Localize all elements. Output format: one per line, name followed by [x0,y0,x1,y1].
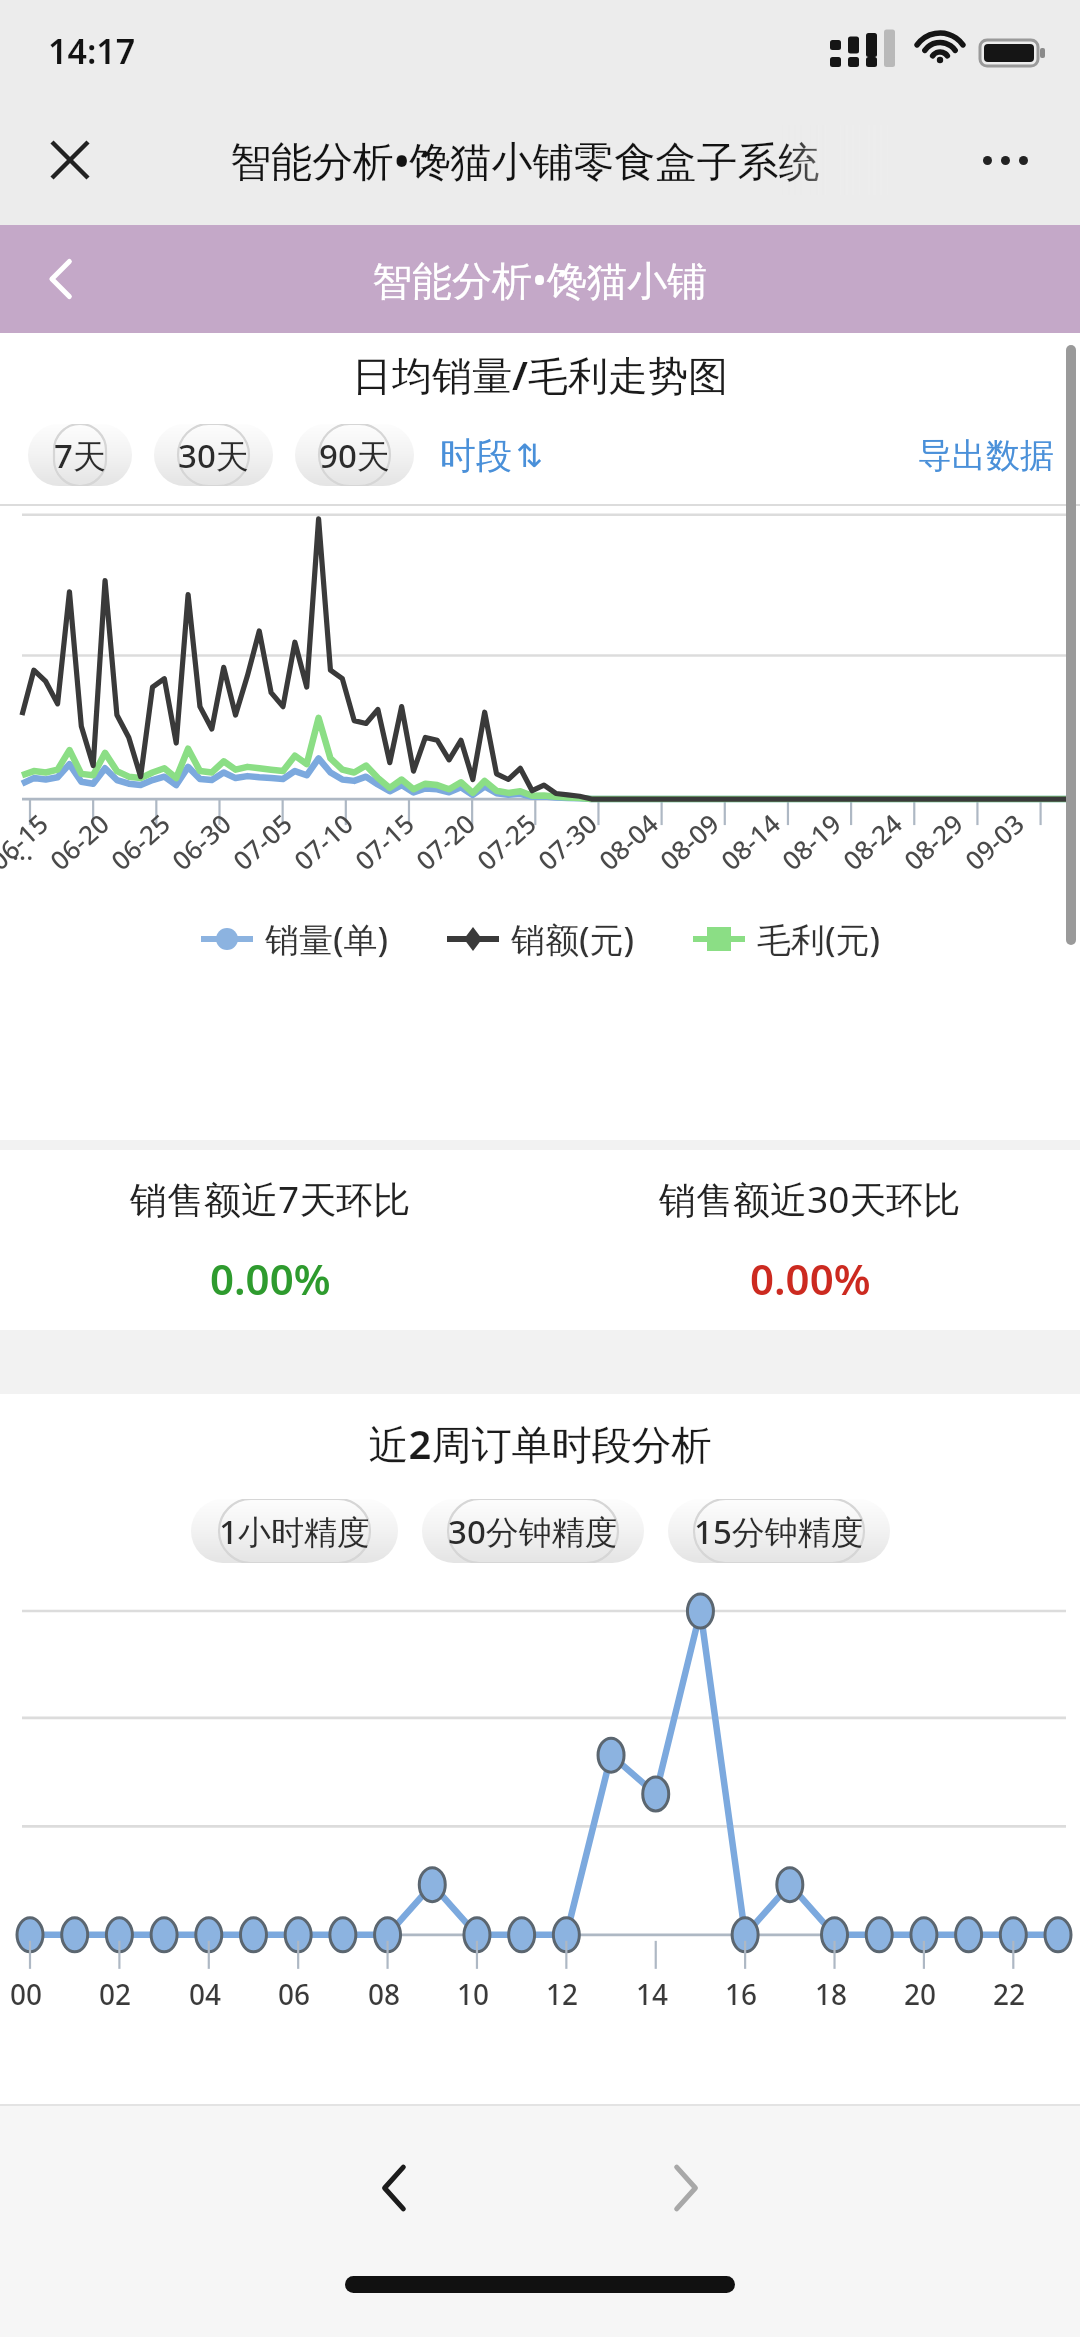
staticText: 30分钟精度 [448,1509,618,1554]
staticText: 07-25 [469,806,543,877]
staticText: 08-09 [652,806,726,877]
button[interactable]: 30分钟精度 [422,1499,644,1563]
staticText: 07-20 [408,806,482,877]
staticText: 08-14 [713,806,787,877]
staticText: 08-19 [774,806,848,877]
button[interactable]: 时段 [440,433,543,478]
button[interactable]: 销售额近30天环比 [540,1150,1080,1330]
button[interactable]: Back [18,235,106,323]
staticText: 毛利(元) [757,916,881,962]
staticText: 1小时精度 [219,1509,370,1554]
button[interactable]: 15分钟精度 [668,1499,890,1563]
staticText: 06 [278,1975,311,2013]
button[interactable]: 销售额近7天环比 [0,1150,540,1330]
staticText: 智能分析•馋猫小铺零食盒子系统 [230,132,820,188]
button[interactable]: 导出数据 [918,434,1054,477]
staticText: 06-25 [103,806,177,877]
staticText: 09-03 [957,806,1031,877]
staticText: 0.00% [210,1250,331,1307]
staticText: 0.00% [750,1250,871,1307]
button[interactable]: 30天 [154,424,273,486]
staticText: 15分钟精度 [694,1509,864,1554]
staticText: 销额(元) [511,916,635,962]
button[interactable]: Forward [630,2133,740,2243]
staticText: ⇅ [516,437,543,474]
staticText: 07-30 [530,806,604,877]
button[interactable]: More options [960,115,1050,205]
staticText: 智能分析•馋猫小铺 [372,252,708,307]
staticText: 07-05 [225,806,299,877]
button[interactable]: 销量(单) [199,916,389,962]
staticText: 06-30 [164,806,238,877]
staticText: 14 [636,1975,669,2013]
staticText: 18 [815,1975,848,2013]
button[interactable]: 毛利(元) [691,916,881,962]
staticText: 销售额近30天环比 [659,1173,961,1224]
staticText: 销量(单) [265,916,389,962]
staticText: 10 [457,1975,490,2013]
staticText: ... [12,832,34,867]
staticText: 日均销量/毛利走势图 [0,347,1080,402]
staticText: 12 [546,1975,579,2013]
button[interactable]: 1小时精度 [191,1499,398,1563]
staticText: 07-15 [347,806,421,877]
staticText: 06-20 [42,806,116,877]
staticText: 近2周订单时段分析 [0,1416,1080,1471]
button[interactable]: Close [30,120,110,200]
staticText: 08-29 [896,806,970,877]
staticText: 时段 [440,433,512,478]
staticText: 06-15 [0,806,55,877]
button[interactable]: Back [340,2133,450,2243]
button[interactable]: 7天 [28,424,132,486]
staticText: 04 [189,1975,222,2013]
staticText: 07-10 [286,806,360,877]
button[interactable]: 90天 [295,424,414,486]
staticText: 22 [993,1975,1026,2013]
staticText: 14:17 [48,28,136,74]
staticText: 00 [10,1975,43,2013]
staticText: 20 [904,1975,937,2013]
staticText: 30天 [178,433,249,478]
staticText: 7天 [54,433,106,478]
staticText: 08 [368,1975,401,2013]
staticText: 08-24 [835,806,909,877]
staticText: 销售额近7天环比 [130,1173,411,1224]
staticText: 90天 [319,433,390,478]
button[interactable]: 销额(元) [445,916,635,962]
staticText: 16 [725,1975,758,2013]
staticText: 08-04 [591,806,665,877]
staticText: 02 [99,1975,132,2013]
